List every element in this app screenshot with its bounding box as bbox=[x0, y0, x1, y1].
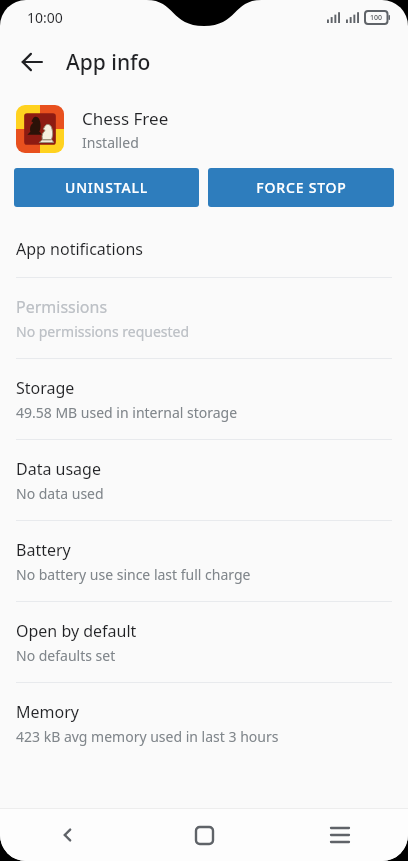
staticText: 423 kB avg memory used in last 3 hours bbox=[16, 727, 279, 746]
button[interactable]: App notifications bbox=[0, 221, 408, 277]
staticText: 10:00 bbox=[27, 8, 63, 27]
staticText: Memory bbox=[16, 701, 79, 723]
button[interactable]: Open by default bbox=[0, 602, 408, 682]
staticText: FORCE STOP bbox=[256, 178, 347, 197]
staticText: 100 bbox=[370, 13, 383, 23]
button[interactable]: Storage bbox=[0, 359, 408, 439]
staticText: Installed bbox=[82, 133, 139, 152]
button[interactable]: Chess Free bbox=[0, 90, 408, 168]
staticText: Storage bbox=[16, 377, 75, 399]
staticText: Permissions bbox=[16, 296, 108, 318]
staticText: No defaults set bbox=[16, 646, 116, 665]
staticText: Battery bbox=[16, 539, 71, 561]
staticText: No permissions requested bbox=[16, 322, 190, 341]
staticText: App info bbox=[66, 48, 151, 77]
button[interactable]: FORCE STOP bbox=[208, 168, 394, 207]
button[interactable]: Back bbox=[8, 38, 56, 86]
staticText: 49.58 MB used in internal storage bbox=[16, 403, 238, 422]
staticText: Data usage bbox=[16, 458, 101, 480]
button[interactable]: Data usage bbox=[0, 440, 408, 520]
staticText: UNINSTALL bbox=[65, 178, 148, 197]
staticText: No battery use since last full charge bbox=[16, 565, 251, 584]
button[interactable]: Memory bbox=[0, 683, 408, 763]
staticText: No data used bbox=[16, 484, 104, 503]
staticText: App notifications bbox=[16, 238, 143, 260]
button[interactable]: Permissions bbox=[0, 278, 408, 358]
button[interactable]: Home bbox=[136, 809, 272, 861]
button[interactable]: Battery bbox=[0, 521, 408, 601]
button[interactable]: Back bbox=[0, 809, 136, 861]
staticText: Chess Free bbox=[82, 107, 169, 130]
staticText: Open by default bbox=[16, 620, 137, 642]
button[interactable]: UNINSTALL bbox=[14, 168, 199, 207]
button[interactable]: Recent apps bbox=[272, 809, 408, 861]
